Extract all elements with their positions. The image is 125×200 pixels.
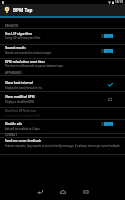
staticText: BEHAVIOR — [5, 24, 19, 28]
button[interactable] — [0, 76, 125, 91]
staticText: Show modified BPM — [5, 95, 35, 99]
staticText: BPM calculation reset time — [5, 60, 46, 64]
staticText: Using LSF with low pass filter. — [5, 36, 41, 40]
button[interactable] — [0, 44, 125, 57]
button[interactable] — [0, 58, 125, 69]
staticText: 15:10 — [115, 0, 123, 4]
button[interactable] — [0, 29, 125, 44]
staticText: Send me some feedback — [5, 139, 42, 143]
button[interactable] — [0, 92, 125, 106]
button[interactable] — [0, 138, 125, 154]
staticText: Results are rounded to closest integer. — [5, 51, 52, 55]
staticText: BPM Tap — [13, 7, 33, 13]
button[interactable] — [0, 119, 125, 132]
staticText: Use LSF algorithm — [5, 32, 32, 36]
staticText: CONTACT — [5, 133, 17, 137]
staticText: ON — [107, 123, 111, 126]
staticText: Ads will be enabled in 2 days. — [5, 127, 41, 131]
staticText: Feature requests, bug reports or just a … — [5, 144, 122, 148]
staticText: APPEARANCE — [5, 71, 22, 75]
staticText: Show beat interval — [5, 81, 34, 85]
staticText: Display a modified BPM. — [5, 100, 35, 104]
button[interactable]: Back — [33, 184, 46, 198]
staticText: Disable ads — [5, 122, 22, 126]
staticText: Divisor for the modified BPM — [5, 114, 41, 118]
staticText: Modified BPM divisor — [5, 109, 37, 113]
staticText: ON — [107, 50, 111, 53]
staticText: The time in milliseconds to pause betwee… — [5, 64, 64, 68]
staticText: ON — [107, 35, 111, 38]
button[interactable]: Recent apps — [79, 184, 92, 198]
staticText: Round results — [5, 46, 26, 50]
button[interactable]: Home — [56, 184, 69, 198]
button[interactable] — [0, 107, 125, 118]
staticText: Display the beat interval in ms. — [5, 86, 43, 90]
